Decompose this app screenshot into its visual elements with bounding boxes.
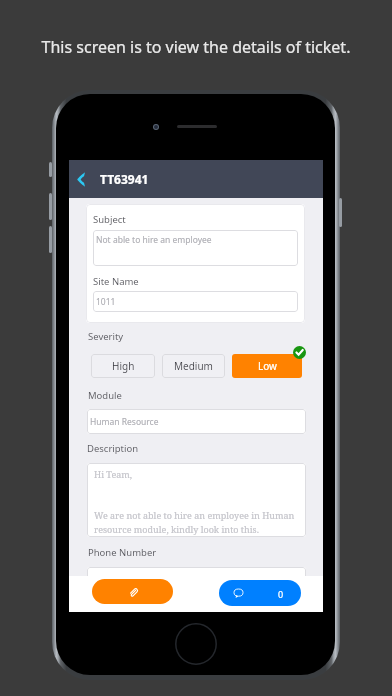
staticText: This screen is to view the details of ti… [0,36,392,58]
button[interactable]: 0 [219,580,301,606]
staticText: Site Name [93,275,139,288]
staticText: Hi Team, [94,468,133,480]
staticText: Not able to hire an employee [96,234,212,246]
button[interactable]: 1011 [93,291,298,312]
staticText: Subject [93,213,126,226]
button[interactable]: Attach file [92,579,173,604]
button[interactable]: Low [232,354,302,378]
staticText: Medium [174,359,213,373]
staticText: Description [87,442,139,455]
staticText: 0 [278,588,284,600]
button[interactable]: Hi Team, [87,463,306,537]
staticText: Severity [88,330,124,343]
staticText: 1011 [96,296,116,308]
staticText: Module [88,389,122,402]
staticText: Low [258,359,277,373]
staticText: TT63941 [100,171,149,187]
staticText: Phone Number [88,546,157,559]
button[interactable]: Back [69,160,100,198]
button[interactable]: Medium [162,354,225,378]
staticText: Human Resource [90,416,159,428]
button[interactable]: High [91,354,155,378]
button[interactable]: Human Resource [87,409,306,434]
button[interactable]: Not able to hire an employee [93,230,298,266]
staticText: We are not able to hire an employee in H… [94,509,299,536]
staticText: High [112,359,135,373]
